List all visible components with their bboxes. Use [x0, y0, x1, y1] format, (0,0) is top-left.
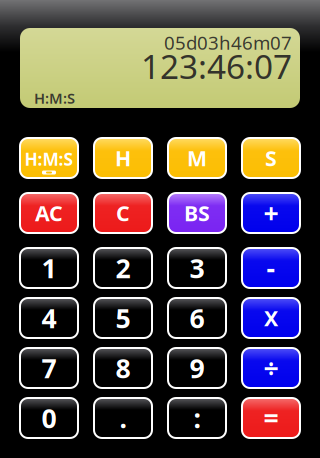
button[interactable]: 1 — [20, 248, 78, 288]
staticText: H:M:S — [34, 88, 75, 108]
staticText: 0 — [41, 400, 56, 436]
button[interactable]: 7 — [20, 348, 78, 388]
button[interactable]: = — [242, 398, 300, 438]
button[interactable]: BS — [168, 193, 226, 233]
button[interactable]: - — [242, 248, 300, 288]
staticText: C — [116, 199, 130, 227]
button[interactable]: 8 — [94, 348, 152, 388]
button[interactable]: H — [94, 138, 152, 178]
button[interactable]: . — [94, 398, 152, 438]
button[interactable]: + — [242, 193, 300, 233]
staticText: 7 — [41, 350, 56, 386]
staticText: H — [115, 144, 131, 172]
staticText: X — [264, 304, 278, 332]
staticText: 4 — [41, 300, 56, 336]
staticText: 2 — [115, 250, 130, 286]
staticText: 5 — [115, 300, 130, 336]
staticText: + — [263, 195, 278, 231]
button[interactable]: 2 — [94, 248, 152, 288]
button[interactable]: 5 — [94, 298, 152, 338]
staticText: 05d03h46m07 — [164, 30, 292, 55]
button[interactable]: 4 — [20, 298, 78, 338]
button[interactable]: 0 — [20, 398, 78, 438]
staticText: BS — [184, 199, 210, 227]
staticText: 1 — [41, 250, 56, 286]
staticText: : — [193, 400, 200, 436]
staticText: . — [119, 400, 126, 436]
button[interactable]: S — [242, 138, 300, 178]
button[interactable]: X — [242, 298, 300, 338]
button[interactable]: : — [168, 398, 226, 438]
staticText: 9 — [189, 350, 204, 386]
staticText: AC — [35, 199, 63, 227]
button[interactable]: AC — [20, 193, 78, 233]
staticText: = — [263, 400, 278, 436]
button[interactable]: 3 — [168, 248, 226, 288]
staticText: S — [265, 144, 277, 172]
button[interactable]: ÷ — [242, 348, 300, 388]
staticText: 8 — [115, 350, 130, 386]
staticText: H:M:S — [24, 147, 73, 170]
staticText: ÷ — [263, 350, 278, 386]
button[interactable]: 9 — [168, 348, 226, 388]
staticText: 6 — [189, 300, 204, 336]
button[interactable]: M — [168, 138, 226, 178]
staticText: - — [266, 250, 275, 286]
button[interactable]: H:M:S — [20, 138, 78, 178]
button[interactable]: 6 — [168, 298, 226, 338]
staticText: 123:46:07 — [141, 44, 292, 88]
button[interactable]: C — [94, 193, 152, 233]
staticText: M — [187, 144, 207, 172]
staticText: 3 — [189, 250, 204, 286]
